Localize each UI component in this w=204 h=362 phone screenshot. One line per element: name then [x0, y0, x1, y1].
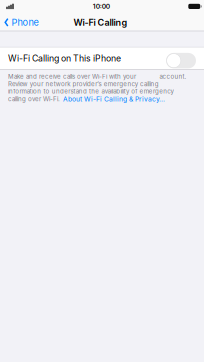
button[interactable]: Wi-Fi Calling on This iPhone	[166, 50, 196, 66]
staticText: Phone	[12, 17, 39, 28]
staticText: 10:00	[93, 2, 110, 10]
button[interactable]: Phone	[0, 17, 39, 28]
button[interactable]: About Wi-Fi Calling & Privacy...	[63, 95, 165, 103]
staticText: calling over Wi-Fi.	[8, 95, 60, 103]
staticText: Wi-Fi Calling	[73, 17, 127, 28]
staticText: About Wi-Fi Calling & Privacy...	[63, 95, 165, 103]
staticText: Wi-Fi Calling on This iPhone	[8, 53, 121, 64]
staticText: Make and receive calls over Wi-Fi with y…	[8, 73, 136, 80]
staticText: information to understand the availabili…	[8, 88, 173, 95]
staticText: Review your network provider’s emergency…	[8, 80, 159, 88]
staticText: account.	[159, 73, 186, 80]
